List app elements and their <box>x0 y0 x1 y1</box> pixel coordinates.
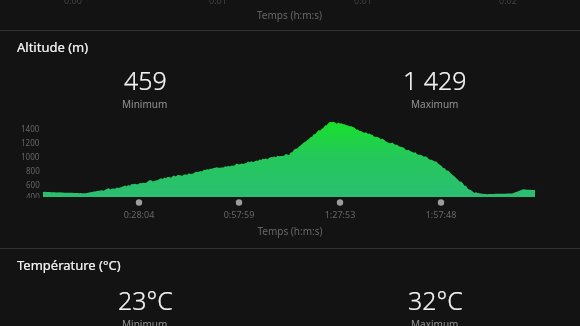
staticText: 32°C <box>408 283 463 317</box>
staticText: 23°C <box>118 283 173 317</box>
staticText: 459 <box>124 63 167 97</box>
staticText: Maximum <box>411 97 459 111</box>
staticText: 1:27:53 <box>310 208 370 220</box>
button[interactable]: 32°C <box>290 283 580 326</box>
staticText: 1:57:48 <box>411 208 471 220</box>
staticText: 0:28:04 <box>109 208 169 220</box>
staticText: Température (°C) <box>17 256 121 274</box>
staticText: Temps (h:m:s) <box>257 8 323 22</box>
staticText: 1 429 <box>403 63 467 97</box>
button[interactable]: 23°C <box>0 283 290 326</box>
staticText: 400 <box>26 191 40 198</box>
staticText: 0:00 <box>64 0 82 6</box>
staticText: 0:01 <box>354 0 372 6</box>
staticText: 0:02 <box>499 0 517 6</box>
staticText: 1400 <box>21 123 40 134</box>
button[interactable]: 1 429 <box>290 63 580 111</box>
staticText: 600 <box>26 179 40 190</box>
staticText: 0:01 <box>209 0 227 6</box>
staticText: Maximum <box>411 317 459 326</box>
staticText: 0:57:59 <box>209 208 269 220</box>
staticText: 800 <box>26 165 40 176</box>
staticText: Minimum <box>122 317 168 326</box>
staticText: 1200 <box>21 137 40 148</box>
staticText: Altitude (m) <box>17 38 89 56</box>
staticText: Temps (h:m:s) <box>0 224 580 238</box>
staticText: 1000 <box>21 151 40 162</box>
button[interactable]: 459 <box>0 63 290 111</box>
staticText: Minimum <box>122 97 168 111</box>
